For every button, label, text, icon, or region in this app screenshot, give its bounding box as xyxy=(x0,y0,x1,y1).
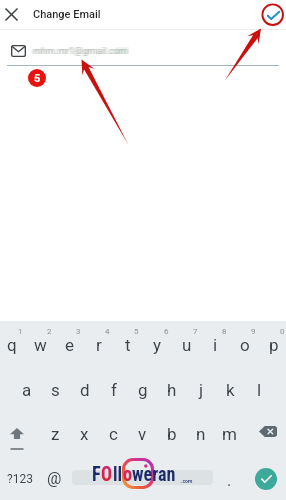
staticText: mhm.mr1@gmail.com xyxy=(33,45,128,56)
staticText: c xyxy=(109,424,118,444)
staticText: @ xyxy=(47,469,62,488)
staticText: r xyxy=(96,335,102,355)
button[interactable]: n xyxy=(186,412,215,456)
button[interactable]: l xyxy=(245,369,274,411)
staticText: y xyxy=(153,335,162,355)
staticText: q xyxy=(7,335,17,355)
staticText: 6 xyxy=(164,327,169,336)
button[interactable]: k xyxy=(216,369,245,411)
button[interactable]: c xyxy=(99,412,128,456)
staticText: .com xyxy=(181,478,193,484)
staticText: d xyxy=(80,380,90,400)
button[interactable]: Enter xyxy=(255,468,277,490)
staticText: l xyxy=(257,380,262,400)
staticText: f xyxy=(111,380,117,400)
staticText: h xyxy=(167,380,177,400)
staticText: 7 xyxy=(193,327,198,336)
button[interactable]: x xyxy=(70,412,99,456)
button[interactable]: 8 xyxy=(201,321,230,367)
staticText: m xyxy=(222,424,237,444)
staticText: a xyxy=(22,380,32,400)
button[interactable]: h xyxy=(157,369,186,411)
button[interactable]: 0 xyxy=(259,321,286,367)
staticText: e xyxy=(65,335,75,355)
staticText: Change Email xyxy=(33,8,101,21)
button[interactable]: Confirm xyxy=(261,3,285,27)
staticText: s xyxy=(51,380,60,400)
staticText: weran xyxy=(132,462,176,485)
button[interactable]: 7 xyxy=(172,321,201,367)
button[interactable]: 2 xyxy=(26,321,55,367)
staticText: k xyxy=(226,380,235,400)
staticText: w xyxy=(34,335,47,355)
button[interactable]: . xyxy=(216,459,243,500)
button[interactable]: m xyxy=(215,412,244,456)
staticText: mhm.mr1@gmail.com xyxy=(35,45,130,56)
staticText: 8 xyxy=(222,327,227,336)
staticText: 3 xyxy=(76,327,81,336)
button[interactable]: 6 xyxy=(143,321,172,367)
staticText: 9 xyxy=(251,327,256,336)
staticText: o xyxy=(240,335,250,355)
button[interactable]: v xyxy=(128,412,157,456)
button[interactable]: s xyxy=(41,369,70,411)
staticText: 5 xyxy=(134,327,139,336)
button[interactable]: 5 xyxy=(113,321,142,367)
button[interactable]: Close xyxy=(0,3,23,26)
staticText: mhm.mr1@gmail.com xyxy=(34,45,129,56)
staticText: u xyxy=(182,335,192,355)
staticText: ?123 xyxy=(7,472,33,486)
button[interactable]: d xyxy=(70,369,99,411)
staticText: mhm.mr1@gmail.com xyxy=(31,45,126,56)
staticText: 4 xyxy=(105,327,110,336)
button[interactable]: z xyxy=(41,412,70,456)
staticText: b xyxy=(167,424,177,444)
staticText: n xyxy=(196,424,206,444)
staticText: p xyxy=(269,335,279,355)
staticText: 0 xyxy=(280,327,285,336)
button[interactable]: ?123 xyxy=(0,457,40,500)
staticText: O xyxy=(101,462,113,485)
button[interactable]: 9 xyxy=(230,321,259,367)
button[interactable]: a xyxy=(12,369,41,411)
staticText: F xyxy=(92,462,101,485)
staticText: mhm.mr1@gmail.com xyxy=(32,45,127,56)
staticText: mhm.mr1@gmail.com xyxy=(32,45,127,56)
staticText: x xyxy=(80,424,89,444)
staticText: v xyxy=(138,424,147,444)
staticText: t xyxy=(125,335,131,355)
staticText: 5 xyxy=(34,72,41,85)
staticText: mhm.mr1@gmail.com xyxy=(34,45,129,56)
button[interactable]: 1 xyxy=(0,321,26,367)
staticText: z xyxy=(51,424,60,444)
button[interactable]: b xyxy=(157,412,186,456)
staticText: ll xyxy=(113,462,123,485)
staticText: g xyxy=(138,380,148,400)
staticText: 1 xyxy=(18,327,23,336)
button[interactable]: g xyxy=(128,369,157,411)
staticText: i xyxy=(213,335,218,355)
staticText: j xyxy=(199,380,204,400)
staticText: . xyxy=(227,471,232,490)
button[interactable]: j xyxy=(187,369,216,411)
button[interactable]: @ xyxy=(40,457,69,500)
button[interactable]: Space xyxy=(69,457,216,500)
staticText: o xyxy=(123,462,132,485)
staticText: 2 xyxy=(47,327,52,336)
button[interactable]: 3 xyxy=(55,321,84,367)
button[interactable]: 4 xyxy=(84,321,113,367)
button[interactable]: f xyxy=(99,369,128,411)
button[interactable]: Shift xyxy=(0,409,40,453)
button[interactable]: Backspace xyxy=(246,409,286,453)
